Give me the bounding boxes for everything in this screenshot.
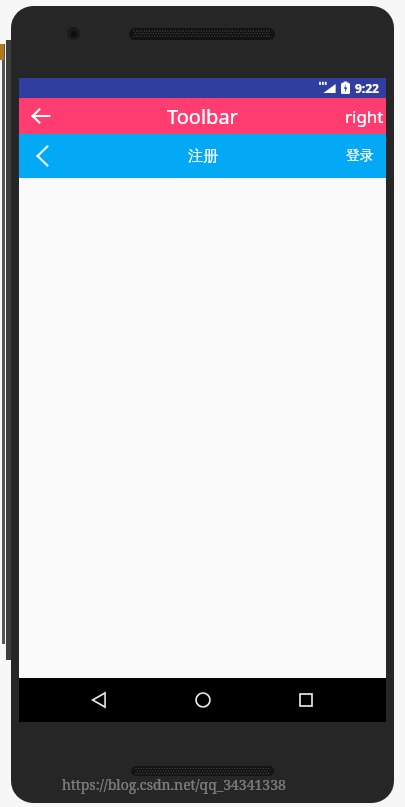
staticText: 登录 bbox=[346, 147, 374, 165]
staticText: 9:22 bbox=[355, 80, 379, 96]
button[interactable]: Home bbox=[180, 678, 226, 722]
button[interactable]: Back bbox=[76, 678, 122, 722]
button[interactable]: right bbox=[343, 98, 386, 134]
staticText: https://blog.csdn.net/qq_34341338 bbox=[62, 775, 286, 794]
staticText: right bbox=[345, 105, 384, 128]
button[interactable]: Back bbox=[19, 98, 63, 134]
button[interactable]: Back bbox=[19, 134, 65, 178]
button[interactable]: 登录 bbox=[338, 134, 386, 178]
staticText: Toolbar bbox=[167, 103, 238, 130]
staticText: 注册 bbox=[188, 147, 218, 166]
button[interactable]: Recent apps bbox=[283, 678, 329, 722]
